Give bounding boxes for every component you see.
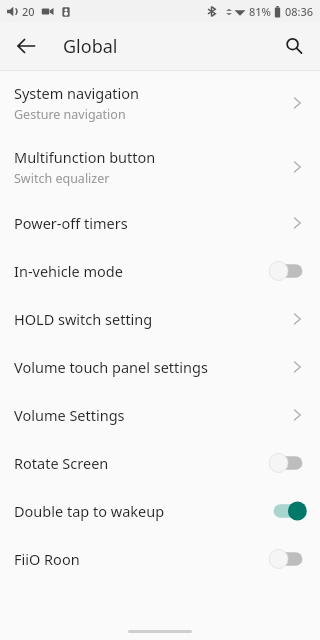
staticText: 08:36 [285, 4, 314, 19]
button[interactable]: FiiO Roon [0, 535, 320, 583]
staticText: HOLD switch setting [14, 309, 153, 329]
staticText: Multifunction button [14, 147, 156, 167]
button[interactable]: Toggle off [270, 260, 306, 282]
staticText: FiiO Roon [14, 549, 80, 569]
staticText: 20 [22, 4, 35, 19]
button[interactable]: System navigation [0, 71, 320, 135]
button[interactable]: Toggle on [270, 500, 306, 522]
button[interactable]: Toggle off [270, 548, 306, 570]
staticText: Rotate Screen [14, 453, 109, 473]
staticText: Global [63, 34, 118, 59]
button[interactable]: Power-off timers [0, 199, 320, 247]
button[interactable]: In-vehicle mode [0, 247, 320, 295]
button[interactable]: HOLD switch setting [0, 295, 320, 343]
button[interactable]: Search [276, 28, 312, 64]
button[interactable]: Volume touch panel settings [0, 343, 320, 391]
button[interactable]: Volume Settings [0, 391, 320, 439]
staticText: 81% [249, 4, 271, 19]
staticText: Power-off timers [14, 213, 128, 233]
button[interactable]: Toggle off [270, 452, 306, 474]
button[interactable]: Back [8, 28, 44, 64]
button[interactable]: Double tap to wakeup [0, 487, 320, 535]
button[interactable]: Multifunction button [0, 135, 320, 199]
staticText: Volume touch panel settings [14, 357, 208, 377]
staticText: In-vehicle mode [14, 261, 123, 281]
staticText: Double tap to wakeup [14, 501, 165, 521]
staticText: Gesture navigation [14, 106, 126, 123]
staticText: System navigation [14, 83, 140, 103]
staticText: Switch equalizer [14, 170, 110, 187]
button[interactable]: Rotate Screen [0, 439, 320, 487]
staticText: Volume Settings [14, 405, 125, 425]
